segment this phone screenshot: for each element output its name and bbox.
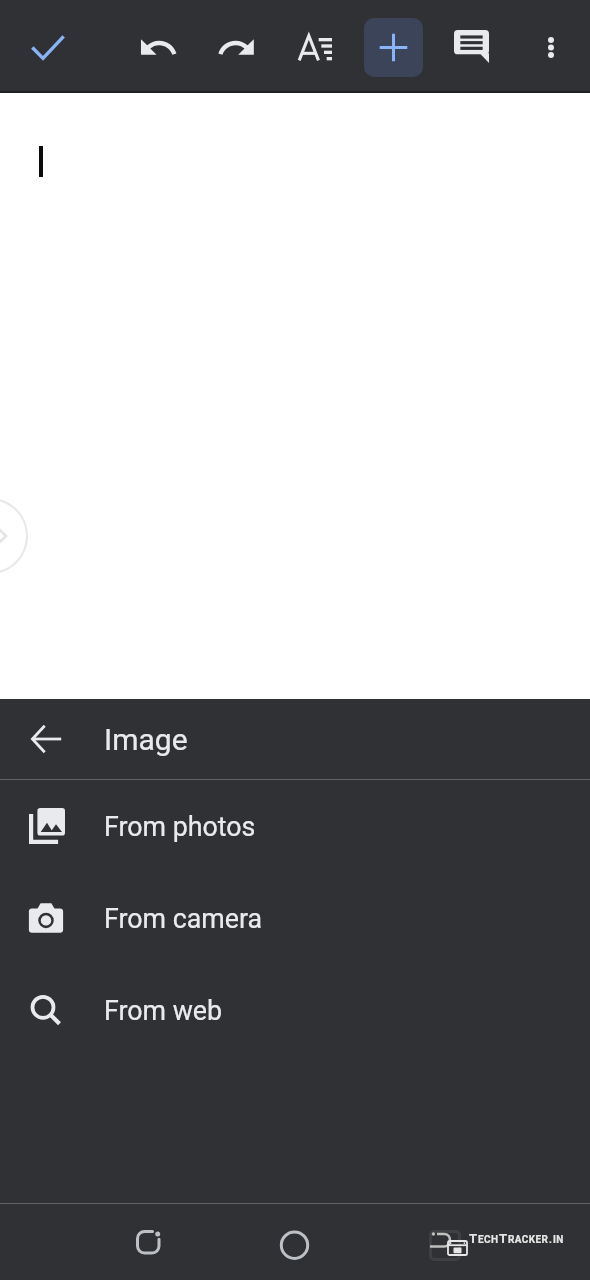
button[interactable]: Show outline [0, 498, 28, 574]
button[interactable]: Text formatting [287, 18, 343, 74]
button[interactable]: Comments [444, 18, 500, 74]
staticText: Image [104, 722, 188, 757]
button[interactable]: Recent apps [422, 1221, 470, 1269]
button[interactable]: Insert [364, 18, 423, 77]
staticText: T [469, 1231, 478, 1246]
button[interactable]: Home [271, 1221, 319, 1269]
button[interactable]: Done [20, 18, 76, 74]
staticText: . [549, 1234, 553, 1246]
button[interactable]: Back [124, 1221, 172, 1269]
button[interactable]: Redo [208, 18, 264, 74]
staticText: RACKER [508, 1234, 549, 1246]
staticText: From camera [104, 903, 263, 934]
staticText: IN [553, 1234, 564, 1246]
button[interactable]: From photos [0, 780, 590, 872]
button[interactable]: Undo [129, 18, 185, 74]
button[interactable]: From web [0, 964, 590, 1056]
staticText: T [499, 1231, 508, 1246]
button[interactable]: From camera [0, 872, 590, 964]
button[interactable]: Image [0, 699, 590, 779]
staticText: From photos [104, 811, 256, 842]
staticText: ECH [478, 1234, 499, 1246]
staticText: From web [104, 995, 223, 1026]
button[interactable]: More options [523, 18, 579, 74]
